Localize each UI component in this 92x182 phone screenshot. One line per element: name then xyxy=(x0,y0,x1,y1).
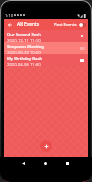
staticText: Simpsons Meeting xyxy=(7,44,44,50)
button[interactable]: My Birthday Bash xyxy=(4,54,88,66)
button[interactable]: Delete event xyxy=(78,56,86,64)
button[interactable]: Simpsons Meeting xyxy=(4,42,88,54)
staticText: Our Second Sesh xyxy=(7,32,41,38)
button[interactable]: Navigate up xyxy=(4,19,15,30)
button[interactable]: Home xyxy=(39,157,52,170)
button[interactable]: Recent apps xyxy=(61,157,74,170)
staticText: 2020-04-06 11:00 xyxy=(7,62,41,66)
button[interactable]: Back xyxy=(17,157,30,170)
button[interactable]: Delete event xyxy=(78,32,86,40)
button[interactable]: Delete event xyxy=(78,44,86,52)
staticText: 2020-09-28 10:00 xyxy=(7,50,41,54)
button[interactable]: Past Events xyxy=(54,22,88,28)
button[interactable]: Add event xyxy=(40,140,52,152)
staticText: Past Events xyxy=(54,22,77,28)
staticText: 50 xyxy=(80,46,85,51)
staticText: 1:10 xyxy=(5,13,13,18)
staticText: My Birthday Bash xyxy=(7,56,43,62)
staticText: 2020-12-11 11:10 xyxy=(7,38,41,42)
button[interactable]: Our Second Sesh xyxy=(4,30,88,42)
staticText: All Events xyxy=(17,21,40,28)
